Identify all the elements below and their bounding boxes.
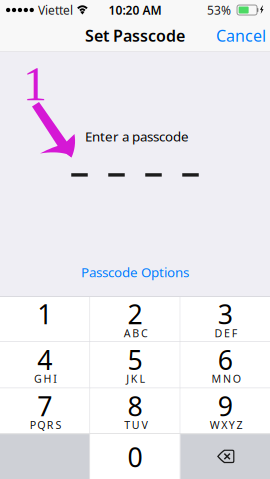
- staticText: Passcode Options: [81, 263, 189, 281]
- staticText: 5: [127, 342, 142, 377]
- button[interactable]: Cancel: [208, 18, 270, 53]
- button[interactable]: 1: [0, 297, 89, 341]
- staticText: WXYZ: [210, 418, 242, 432]
- button[interactable]: 8: [90, 388, 180, 433]
- button[interactable]: Delete: [180, 434, 270, 479]
- staticText: 10:20 AM: [108, 2, 161, 18]
- button[interactable]: 6: [180, 342, 270, 388]
- staticText: PQRS: [30, 418, 61, 432]
- staticText: MNO: [211, 372, 241, 386]
- staticText: 3: [218, 296, 233, 332]
- staticText: GHI: [34, 372, 57, 386]
- staticText: 53%: [207, 2, 231, 18]
- button[interactable]: 7: [0, 388, 89, 433]
- staticText: 4: [37, 342, 52, 377]
- staticText: ABC: [124, 326, 148, 340]
- button[interactable]: 9: [180, 388, 270, 433]
- staticText: 7: [37, 388, 52, 424]
- button[interactable]: Passcode Options: [71, 258, 199, 286]
- staticText: DEF: [214, 326, 238, 340]
- button[interactable]: 0: [90, 434, 180, 479]
- staticText: 2: [127, 296, 142, 332]
- button[interactable]: 4: [0, 342, 89, 388]
- staticText: 0: [127, 439, 142, 475]
- staticText: JKL: [126, 372, 145, 386]
- staticText: Cancel: [216, 25, 266, 46]
- staticText: Enter a passcode: [85, 127, 189, 145]
- staticText: 1: [37, 296, 52, 332]
- button[interactable]: 2: [90, 297, 180, 341]
- staticText: Viettel: [38, 2, 73, 18]
- staticText: 9: [218, 388, 233, 424]
- staticText: 8: [127, 388, 142, 424]
- staticText: 6: [218, 342, 233, 377]
- staticText: 1: [23, 57, 47, 111]
- staticText: Set Passcode: [85, 25, 185, 46]
- button[interactable]: 5: [90, 342, 180, 388]
- button[interactable]: 3: [180, 297, 270, 341]
- staticText: TUV: [124, 418, 147, 432]
